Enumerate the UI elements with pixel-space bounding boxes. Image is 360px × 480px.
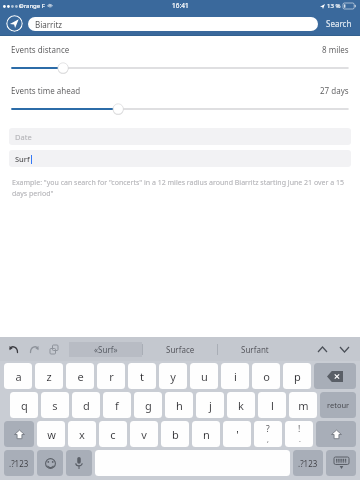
staticText: , bbox=[267, 435, 269, 445]
staticText: e bbox=[77, 369, 84, 384]
button[interactable]: Surfant bbox=[218, 342, 292, 357]
button[interactable]: k bbox=[227, 392, 255, 418]
button[interactable]: Undo bbox=[7, 342, 21, 356]
staticText: s bbox=[52, 398, 58, 413]
button[interactable]: ! bbox=[285, 421, 313, 447]
staticText: .?123 bbox=[298, 458, 318, 469]
button[interactable]: l bbox=[258, 392, 286, 418]
staticText: x bbox=[79, 427, 85, 442]
staticText: j bbox=[209, 398, 212, 413]
button[interactable]: z bbox=[35, 363, 63, 389]
staticText: Events time ahead bbox=[11, 85, 81, 96]
staticText: . bbox=[299, 435, 301, 445]
staticText: c bbox=[110, 427, 116, 442]
button[interactable]: n bbox=[192, 421, 220, 447]
button[interactable] bbox=[0, 61, 360, 75]
button[interactable]: ? bbox=[254, 421, 282, 447]
button[interactable]: d bbox=[72, 392, 100, 418]
staticText: Surf bbox=[15, 154, 30, 164]
button[interactable]: u bbox=[190, 363, 218, 389]
button[interactable] bbox=[0, 102, 360, 116]
button[interactable]: Biarritz bbox=[28, 17, 318, 31]
button[interactable]: p bbox=[283, 363, 311, 389]
button[interactable]: v bbox=[130, 421, 158, 447]
button[interactable]: Shift bbox=[316, 421, 356, 447]
staticText: l bbox=[271, 398, 274, 413]
staticText: v bbox=[141, 427, 147, 442]
button[interactable]: j bbox=[196, 392, 224, 418]
staticText: Biarritz bbox=[35, 19, 63, 30]
button[interactable]: Redo bbox=[27, 342, 41, 356]
button[interactable]: x bbox=[68, 421, 96, 447]
staticText: w bbox=[47, 427, 56, 442]
button[interactable]: Previous bbox=[314, 341, 330, 357]
button[interactable]: Surface bbox=[143, 342, 217, 357]
staticText: z bbox=[46, 369, 52, 384]
staticText: Example: "you can search for "concerts" … bbox=[12, 178, 348, 198]
button[interactable]: m bbox=[289, 392, 317, 418]
button[interactable]: .?123 bbox=[4, 450, 34, 476]
button[interactable]: y bbox=[159, 363, 187, 389]
button[interactable]: b bbox=[161, 421, 189, 447]
button[interactable]: a bbox=[4, 363, 32, 389]
staticText: Events distance bbox=[11, 44, 70, 55]
staticText: a bbox=[15, 369, 22, 384]
staticText: m bbox=[298, 398, 309, 413]
staticText: k bbox=[238, 398, 244, 413]
staticText: 16:41 bbox=[172, 1, 189, 10]
staticText: ! bbox=[298, 423, 301, 435]
staticText: retour bbox=[327, 400, 350, 410]
button[interactable]: ' bbox=[223, 421, 251, 447]
button[interactable]: i bbox=[221, 363, 249, 389]
button[interactable]: g bbox=[134, 392, 162, 418]
button[interactable]: w bbox=[37, 421, 65, 447]
staticText: 8 miles bbox=[322, 44, 349, 55]
button[interactable]: s bbox=[41, 392, 69, 418]
staticText: f bbox=[115, 398, 119, 413]
button[interactable]: retour bbox=[320, 392, 356, 418]
staticText: u bbox=[201, 369, 208, 384]
staticText: Surfant bbox=[241, 344, 269, 355]
staticText: r bbox=[109, 369, 114, 384]
button[interactable]: h bbox=[165, 392, 193, 418]
staticText: Search bbox=[326, 18, 352, 29]
button[interactable]: Date bbox=[9, 128, 351, 145]
staticText: «Surf» bbox=[94, 344, 118, 355]
staticText: .?123 bbox=[9, 458, 29, 469]
button[interactable]: e bbox=[66, 363, 94, 389]
button[interactable]: .?123 bbox=[293, 450, 323, 476]
button[interactable]: f bbox=[103, 392, 131, 418]
staticText: 27 days bbox=[320, 85, 349, 96]
button[interactable]: t bbox=[128, 363, 156, 389]
staticText: ' bbox=[236, 427, 239, 442]
staticText: b bbox=[172, 427, 179, 442]
staticText: i bbox=[234, 369, 237, 384]
button[interactable]: Key bbox=[4, 421, 34, 447]
button[interactable]: «Surf» bbox=[69, 342, 142, 357]
button[interactable]: Locate bbox=[6, 15, 23, 32]
button[interactable]: Paste bbox=[47, 342, 61, 356]
staticText: g bbox=[145, 398, 152, 413]
staticText: d bbox=[83, 398, 90, 413]
button[interactable]: q bbox=[10, 392, 38, 418]
button[interactable]: o bbox=[252, 363, 280, 389]
button[interactable]: Key bbox=[37, 450, 63, 476]
staticText: 13 % bbox=[327, 2, 341, 10]
button[interactable]: Surf bbox=[9, 150, 351, 167]
button[interactable]: Key bbox=[66, 450, 92, 476]
button[interactable]: Backspace bbox=[314, 363, 356, 389]
staticText: Surface bbox=[166, 344, 195, 355]
staticText: h bbox=[176, 398, 183, 413]
staticText: p bbox=[294, 369, 301, 384]
staticText: Date bbox=[15, 132, 32, 142]
staticText: n bbox=[203, 427, 210, 442]
button[interactable]: Next bbox=[336, 341, 352, 357]
button[interactable]: Key bbox=[326, 450, 356, 476]
button[interactable]: r bbox=[97, 363, 125, 389]
staticText: ? bbox=[266, 423, 270, 435]
staticText: y bbox=[170, 369, 176, 384]
button[interactable]: Search bbox=[324, 15, 354, 32]
staticText: t bbox=[140, 369, 144, 384]
button[interactable]: c bbox=[99, 421, 127, 447]
